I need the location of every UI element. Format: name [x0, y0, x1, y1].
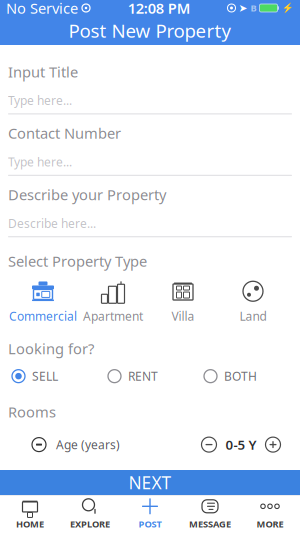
button[interactable]: Villa [148, 281, 218, 323]
button[interactable]: POST [120, 495, 180, 533]
staticText: POST [138, 518, 161, 530]
staticText: ➤ [238, 2, 247, 14]
button[interactable]: SELL [12, 368, 108, 384]
staticText: Villa [171, 308, 194, 324]
button[interactable]: BOTH [204, 368, 292, 384]
staticText: Rooms [8, 402, 56, 422]
staticText: Commercial [9, 308, 77, 324]
button[interactable]: MESSAGE [180, 495, 240, 533]
staticText: HOME [16, 518, 44, 530]
staticText: Select Property Type [8, 251, 147, 271]
staticText: MORE [256, 518, 283, 530]
staticText: MESSAGE [189, 518, 231, 530]
staticText: Input Title [8, 62, 78, 81]
button[interactable]: MORE [240, 495, 300, 533]
button[interactable]: Decrease age [198, 434, 220, 456]
staticText: BOTH [224, 368, 257, 384]
staticText: EXPLORE [70, 518, 110, 530]
staticText: NEXT [128, 471, 171, 494]
button[interactable]: EXPLORE [60, 495, 120, 533]
button[interactable]: Commercial [8, 281, 78, 323]
staticText: Post New Property [68, 18, 231, 43]
staticText: Describe here... [8, 215, 96, 231]
staticText: RENT [128, 368, 158, 384]
staticText: Contact Number [8, 123, 121, 143]
staticText: SELL [32, 368, 58, 384]
button[interactable]: Increase age [262, 434, 284, 456]
staticText: No Service [6, 0, 78, 18]
button[interactable]: Apartment [78, 281, 148, 323]
button[interactable]: Land [218, 281, 288, 323]
staticText: Looking for? [8, 339, 94, 358]
staticText: B [250, 2, 256, 14]
button[interactable]: RENT [108, 368, 204, 384]
staticText: Describe your Property [8, 185, 166, 204]
button[interactable]: HOME [0, 495, 60, 533]
staticText: 12:08 PM [128, 0, 191, 18]
staticText: Apartment [83, 308, 143, 324]
button[interactable]: NEXT [0, 470, 300, 495]
staticText: 0-5 Y [225, 436, 256, 453]
staticText: Type here... [8, 154, 72, 170]
staticText: Land [239, 308, 266, 324]
staticText: Type here... [8, 92, 72, 108]
staticText: Age (years) [56, 437, 120, 452]
staticText: ⚡ [282, 3, 294, 13]
